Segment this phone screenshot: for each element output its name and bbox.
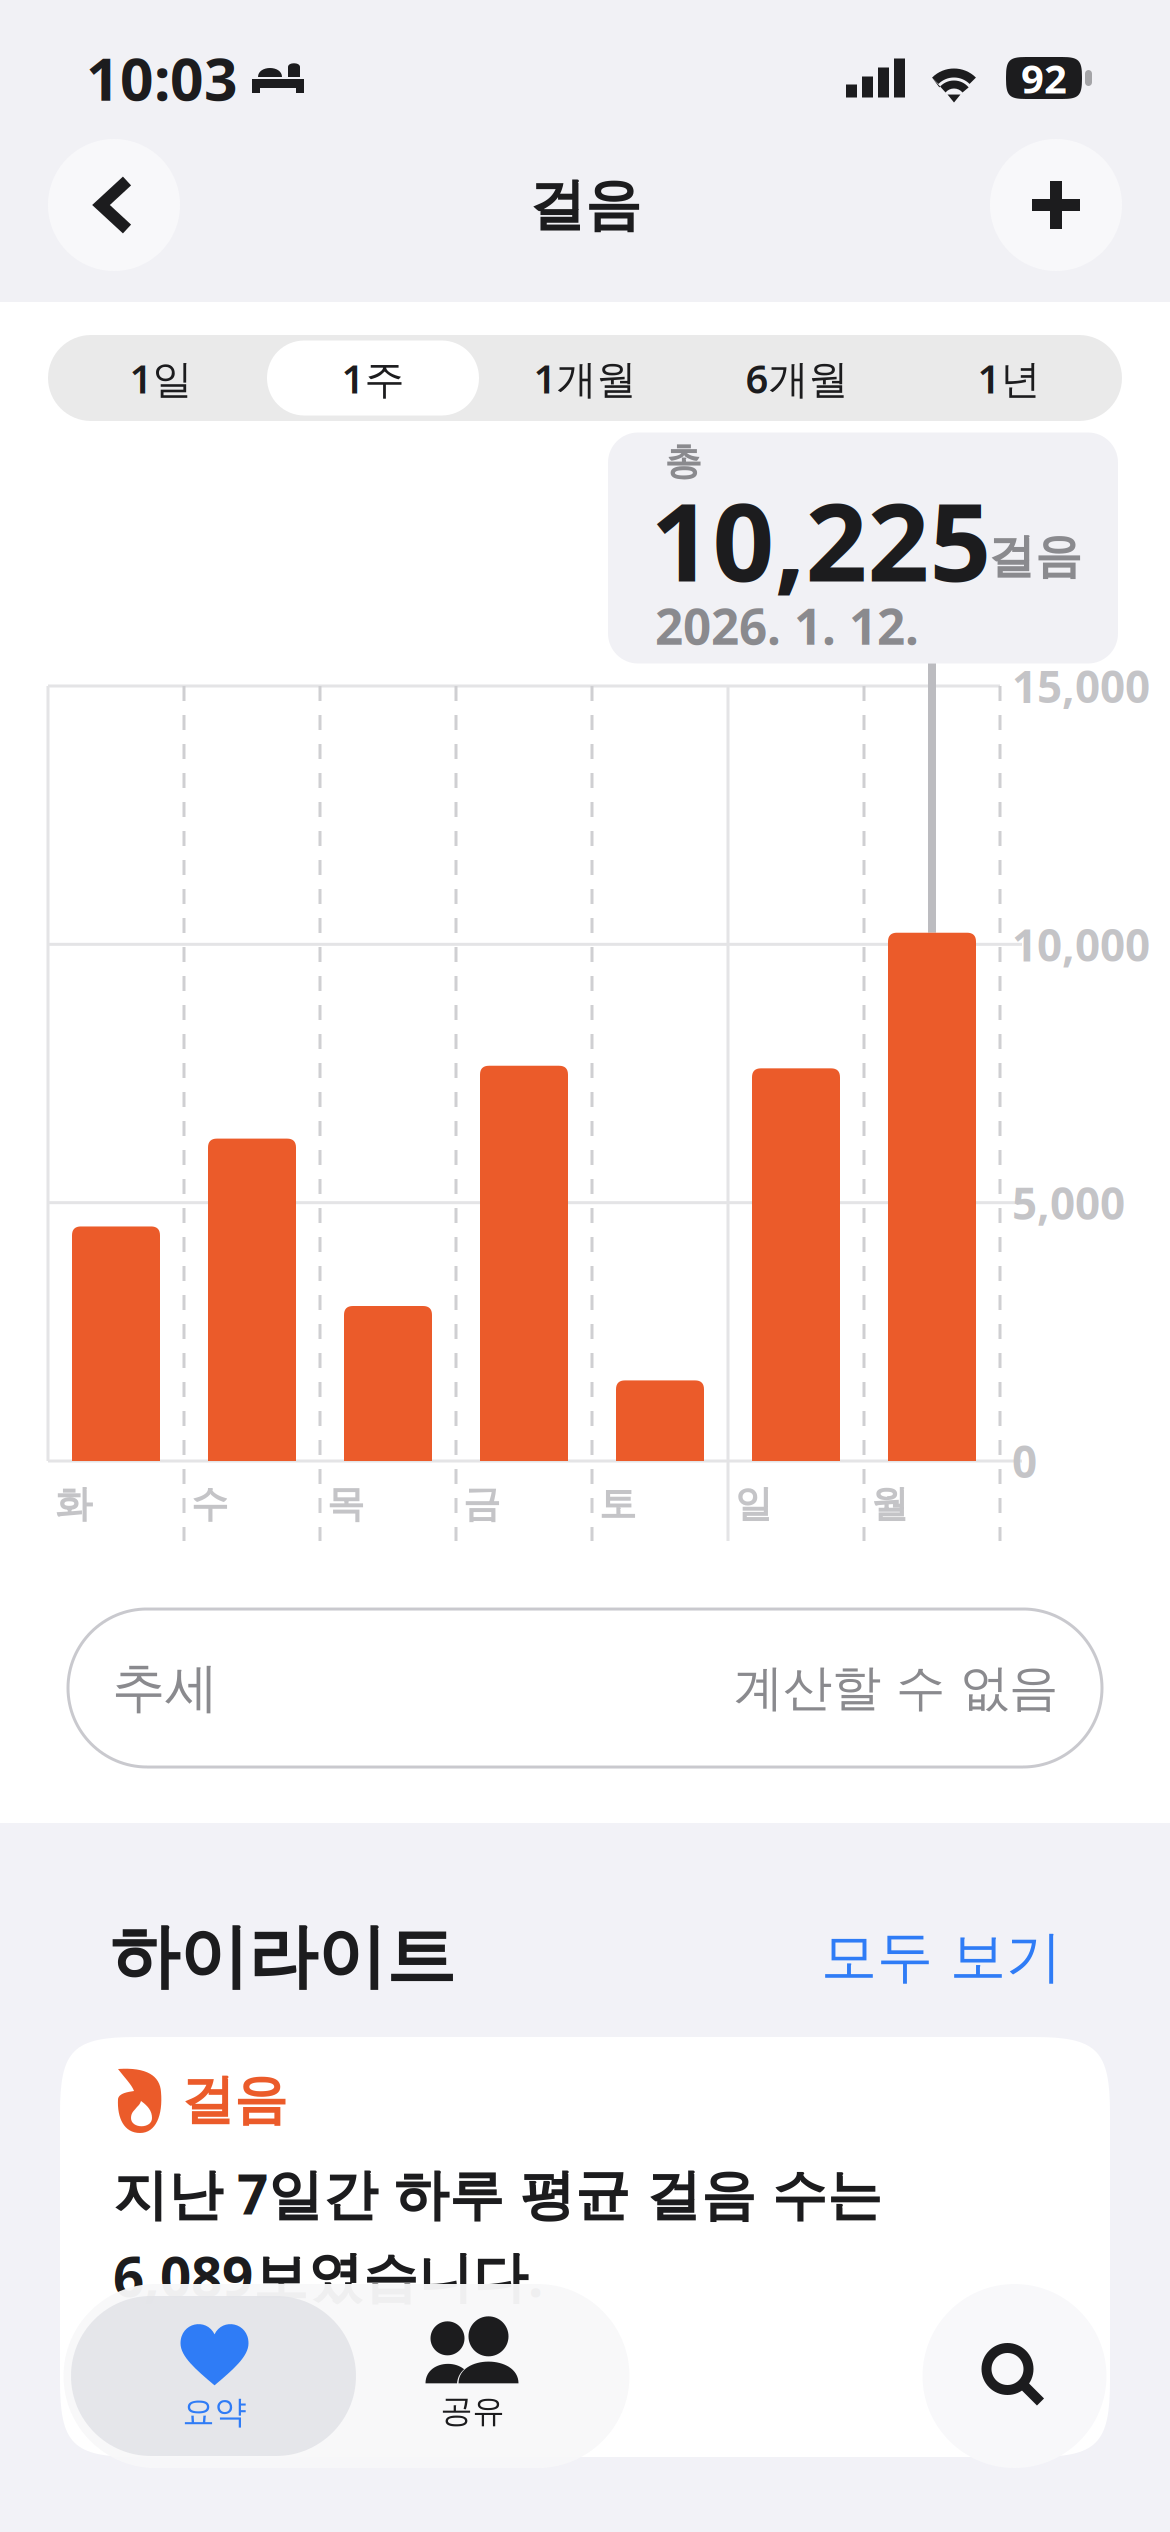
staticText: 1주	[341, 351, 404, 404]
button[interactable]: 1일	[55, 340, 267, 415]
staticText: 수	[191, 1481, 228, 1527]
staticText: 하이라이트	[110, 1914, 455, 2000]
button[interactable]: Add data	[990, 139, 1122, 271]
staticText: 10,225	[650, 468, 991, 611]
staticText: 걸음	[529, 171, 641, 239]
staticText: 6개월	[745, 351, 848, 404]
staticText: 걸음	[181, 2067, 287, 2133]
staticText: 추세	[112, 1655, 218, 1721]
staticText: 2026. 1. 12.	[655, 593, 919, 658]
staticText: 지난 7일간 하루 평균 걸음 수는	[113, 2157, 882, 2230]
staticText: 모두 보기	[821, 1923, 1062, 1991]
button[interactable]: 공유	[340, 2296, 605, 2456]
staticText: 1년	[977, 351, 1040, 404]
staticText: 5,000	[1012, 1173, 1125, 1232]
button[interactable]: Search	[922, 2284, 1106, 2468]
staticText: 요약	[182, 2392, 246, 2432]
staticText: 월	[871, 1481, 908, 1527]
staticText: 1일	[129, 351, 192, 404]
button[interactable]: 1주	[267, 340, 479, 415]
staticText: 화	[55, 1481, 92, 1527]
button[interactable]: 1개월	[479, 340, 691, 415]
staticText: 목	[327, 1481, 364, 1527]
staticText: 15,000	[1012, 657, 1150, 715]
button[interactable]: 1년	[903, 340, 1115, 415]
staticText: 92	[1021, 51, 1067, 104]
button[interactable]: 6개월	[691, 340, 903, 415]
staticText: 0	[1012, 1432, 1037, 1490]
staticText: 토	[599, 1481, 636, 1527]
staticText: 총	[664, 439, 701, 484]
button[interactable]: 요약	[72, 2296, 357, 2456]
staticText: 일	[735, 1481, 772, 1527]
staticText: 10:03	[86, 39, 238, 117]
staticText: 공유	[440, 2391, 504, 2431]
button[interactable]: 추세	[68, 1609, 1102, 1767]
staticText: 금	[463, 1481, 500, 1527]
button[interactable]: 모두 보기	[821, 1923, 1062, 1991]
button[interactable]: Back	[48, 139, 180, 271]
staticText: 1개월	[533, 351, 636, 404]
staticText: 10,000	[1012, 915, 1150, 973]
staticText: 계산할 수 없음	[734, 1658, 1058, 1718]
staticText: 걸음	[988, 528, 1082, 585]
staticText: 6,089보였습니다.	[113, 2240, 543, 2312]
